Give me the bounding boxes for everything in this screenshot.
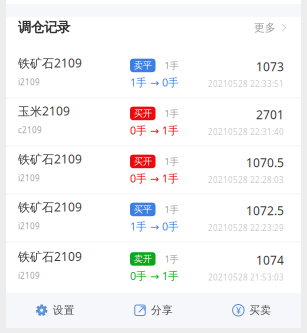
staticText: 2701 <box>256 107 284 123</box>
staticText: i2109 <box>18 173 40 183</box>
staticText: 20210528 21:53:03 <box>208 272 284 283</box>
staticText: 分享 <box>151 304 173 317</box>
button[interactable]: 玉米2109 <box>6 98 301 146</box>
staticText: 1073 <box>256 59 284 75</box>
staticText: 1手 → 0手 <box>130 219 179 233</box>
staticText: 铁矿石2109 <box>18 55 82 71</box>
staticText: i2109 <box>18 77 40 87</box>
button[interactable]: 铁矿石2109 <box>6 194 301 242</box>
staticText: 1070.5 <box>246 155 284 171</box>
staticText: 20210528 22:33:51 <box>208 79 284 89</box>
staticText: i2109 <box>18 221 40 231</box>
staticText: 1手 <box>164 253 178 265</box>
staticText: 1手 → 0手 <box>130 75 179 89</box>
staticText: 20210528 22:31:40 <box>208 127 284 137</box>
staticText: 铁矿石2109 <box>18 151 82 167</box>
staticText: 20210528 22:28:03 <box>208 175 284 185</box>
button[interactable]: 铁矿石2109 <box>6 242 301 292</box>
staticText: 调仓记录 <box>18 19 70 35</box>
staticText: 0手 → 1手 <box>130 171 179 185</box>
staticText: 买开 <box>134 156 152 167</box>
staticText: 买开 <box>134 108 152 119</box>
staticText: 玉米2109 <box>18 103 70 119</box>
staticText: 铁矿石2109 <box>18 199 82 215</box>
staticText: 卖开 <box>134 253 152 265</box>
staticText: 20210528 22:23:29 <box>208 223 284 233</box>
staticText: 卖平 <box>134 60 152 71</box>
staticText: 0手 → 1手 <box>130 123 179 137</box>
staticText: 买卖 <box>249 304 271 317</box>
button[interactable]: 更多 <box>254 16 289 34</box>
staticText: 1手 <box>164 59 178 72</box>
button[interactable]: 铁矿石2109 <box>6 50 301 98</box>
staticText: 1手 <box>164 203 178 216</box>
staticText: 更多 <box>254 21 276 34</box>
staticText: 设置 <box>53 304 75 317</box>
staticText: 铁矿石2109 <box>18 248 82 264</box>
staticText: 1074 <box>256 252 284 268</box>
staticText: i2109 <box>18 270 40 281</box>
staticText: 0手 → 1手 <box>130 269 179 283</box>
staticText: 1手 <box>164 155 178 168</box>
button[interactable]: 分享 <box>104 292 203 328</box>
staticText: 1手 <box>164 107 178 120</box>
staticText: 买平 <box>134 204 152 215</box>
button[interactable]: 设置 <box>6 292 104 328</box>
staticText: 1072.5 <box>246 203 284 219</box>
staticText: c2109 <box>18 125 42 135</box>
button[interactable]: ¥ <box>203 292 301 328</box>
button[interactable]: 铁矿石2109 <box>6 146 301 194</box>
staticText: ¥ <box>236 304 241 316</box>
